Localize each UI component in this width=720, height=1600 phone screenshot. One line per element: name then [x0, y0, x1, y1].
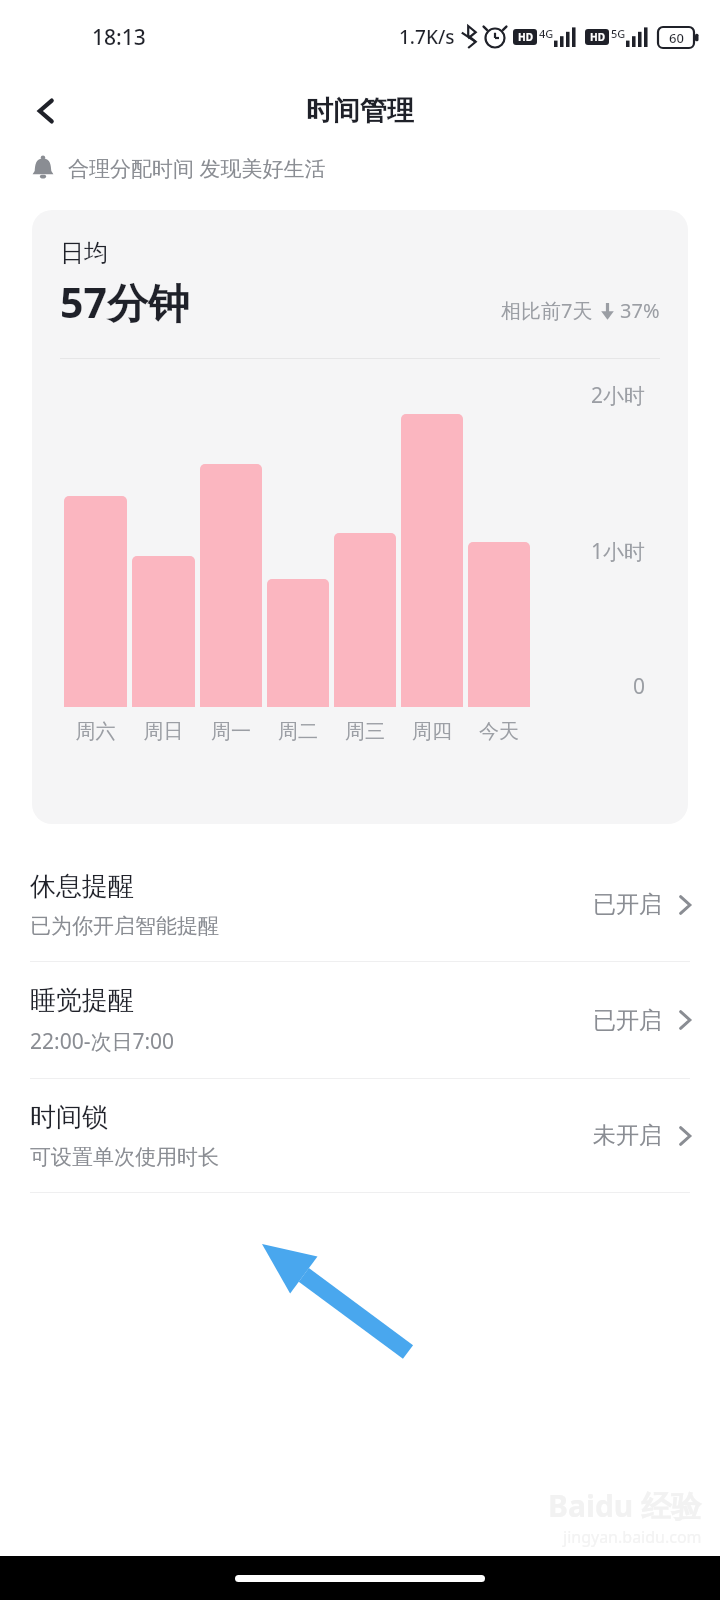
staticText: 1.7K/s [399, 24, 455, 50]
staticText: 相比前7天 [501, 297, 593, 324]
staticText: 0 [633, 672, 646, 701]
staticText: 57分钟 [60, 274, 189, 330]
staticText: 周三 [334, 719, 396, 744]
staticText: 已开启 [593, 890, 662, 919]
staticText: 合理分配时间 发现美好生活 [68, 154, 326, 183]
staticText: 休息提醒 [30, 870, 134, 903]
staticText: 37% [620, 297, 660, 324]
staticText: 18:13 [92, 23, 146, 52]
staticText: 周四 [401, 719, 463, 744]
button[interactable]: 返回 [18, 83, 74, 139]
staticText: 未开启 [593, 1121, 662, 1150]
staticText: 5G [611, 26, 626, 41]
button[interactable]: 睡觉提醒 [0, 962, 720, 1078]
staticText: 日均 [60, 238, 108, 268]
staticText: Baidu 经验 [548, 1485, 702, 1526]
staticText: 60 [669, 29, 684, 47]
staticText: jingyan.baidu.com [563, 1526, 702, 1548]
staticText: 2小时 [591, 381, 646, 410]
staticText: 时间管理 [306, 94, 414, 128]
staticText: 4G [539, 26, 554, 41]
staticText: 周二 [267, 719, 329, 744]
staticText: 1小时 [591, 537, 646, 566]
staticText: HD [518, 30, 533, 44]
button[interactable]: 休息提醒 [0, 848, 720, 961]
staticText: 睡觉提醒 [30, 984, 134, 1017]
staticText: 已开启 [593, 1006, 662, 1035]
staticText: 22:00-次日7:00 [30, 1027, 175, 1056]
staticText: 已为你开启智能提醒 [30, 913, 219, 939]
staticText: 时间锁 [30, 1101, 108, 1134]
button[interactable]: 时间锁 [0, 1079, 720, 1192]
staticText: 周一 [200, 719, 262, 744]
staticText: 可设置单次使用时长 [30, 1144, 219, 1170]
staticText: HD [590, 30, 605, 44]
staticText: 周日 [132, 719, 195, 744]
staticText: 今天 [468, 719, 530, 744]
staticText: 周六 [64, 719, 127, 744]
